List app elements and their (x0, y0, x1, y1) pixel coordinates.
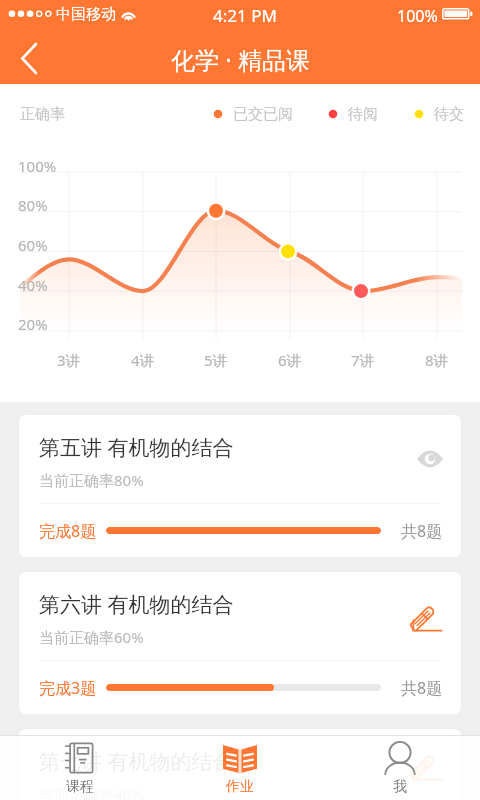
staticText: 80% (18, 195, 48, 215)
staticText: 已交已阅 (233, 105, 293, 124)
button[interactable]: 第五讲 有机物的结合 (19, 415, 461, 557)
staticText: 当前正确率60% (39, 627, 144, 647)
staticText: 第七讲 有机物的结合 (39, 747, 234, 776)
staticText: 共8题 (401, 677, 443, 699)
staticText: 共8题 (401, 520, 443, 542)
staticText: 当前正确率80% (39, 470, 144, 490)
staticText: 60% (18, 235, 48, 255)
button[interactable]: Back (4, 34, 52, 82)
staticText: 正确率 (20, 105, 65, 124)
staticText: 5讲 (204, 350, 228, 370)
button[interactable]: 作业 (160, 736, 320, 800)
staticText: 我 (393, 778, 407, 796)
button[interactable]: 我 (320, 736, 480, 800)
button[interactable]: Edit (407, 745, 447, 785)
staticText: 中国移动 (56, 5, 116, 24)
button[interactable]: Edit (407, 596, 447, 636)
button[interactable]: 课程 (0, 736, 160, 800)
staticText: 完成3题 (39, 677, 97, 699)
staticText: 7讲 (351, 350, 375, 370)
staticText: 完成8题 (39, 520, 97, 542)
staticText: 第五讲 有机物的结合 (39, 433, 234, 462)
staticText: 100% (397, 5, 438, 27)
staticText: 4讲 (131, 350, 155, 370)
button[interactable]: 第七讲 有机物的结合 (19, 729, 461, 800)
staticText: 第六讲 有机物的结合 (39, 590, 234, 619)
staticText: 待交 (434, 105, 464, 124)
staticText: 待阅 (348, 105, 378, 124)
staticText: 6讲 (278, 350, 302, 370)
staticText: 课程 (66, 778, 94, 796)
button[interactable]: 第六讲 有机物的结合 (19, 572, 461, 714)
staticText: 化学 · 精品课 (171, 43, 310, 76)
staticText: 100% (18, 156, 57, 176)
staticText: 3讲 (57, 350, 81, 370)
staticText: 8讲 (425, 350, 449, 370)
staticText: 20% (18, 314, 48, 334)
button[interactable]: View (413, 442, 447, 476)
staticText: 40% (18, 275, 48, 295)
staticText: 4:21 PM (213, 4, 277, 27)
staticText: 当前正确率40% (39, 784, 144, 800)
staticText: 作业 (226, 778, 254, 796)
